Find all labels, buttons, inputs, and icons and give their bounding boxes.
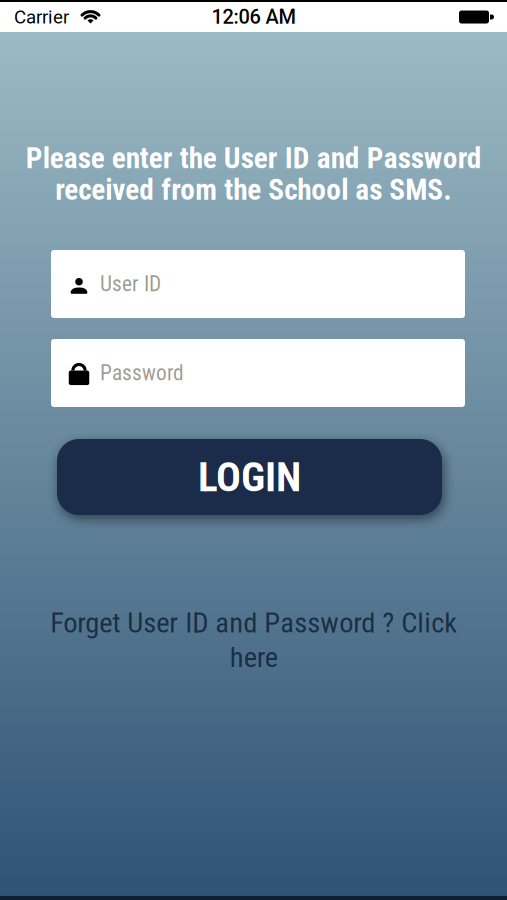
staticText: 12:06 AM [211, 5, 295, 29]
staticText: Please enter the User ID and Password re… [25, 141, 481, 207]
staticText: Forget User ID and Password ? Click here [50, 606, 457, 674]
staticText: Carrier [14, 6, 69, 28]
staticText: LOGIN [198, 453, 301, 501]
staticText: Password [100, 360, 184, 385]
staticText: User ID [100, 271, 161, 296]
textField[interactable]: User ID [100, 271, 465, 296]
button[interactable]: Forget User ID and Password ? Click here [50, 606, 457, 674]
textField[interactable]: Password [100, 360, 465, 385]
button[interactable]: LOGIN [57, 439, 442, 515]
